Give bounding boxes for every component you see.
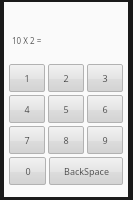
button[interactable]: 5 (48, 95, 84, 123)
staticText: 7 (24, 134, 30, 146)
staticText: 2 (63, 72, 69, 84)
staticText: 6 (102, 103, 108, 115)
staticText: 1 (24, 72, 30, 84)
staticText: 10 X 2 = (12, 35, 42, 46)
staticText: 8 (63, 134, 69, 146)
button[interactable]: 4 (9, 95, 45, 123)
staticText: 5 (63, 103, 69, 115)
button[interactable]: 8 (48, 126, 84, 154)
staticText: 4 (24, 103, 30, 115)
staticText: 3 (102, 72, 108, 84)
button[interactable]: 3 (87, 64, 123, 92)
staticText: BackSpace (64, 165, 109, 177)
button[interactable]: 9 (87, 126, 123, 154)
button[interactable]: BackSpace (49, 157, 123, 185)
button[interactable]: 6 (87, 95, 123, 123)
staticText: 9 (102, 134, 108, 146)
button[interactable]: 1 (9, 64, 45, 92)
button[interactable]: 0 (9, 157, 46, 185)
staticText: 0 (25, 165, 31, 177)
button[interactable]: 7 (9, 126, 45, 154)
button[interactable]: 2 (48, 64, 84, 92)
